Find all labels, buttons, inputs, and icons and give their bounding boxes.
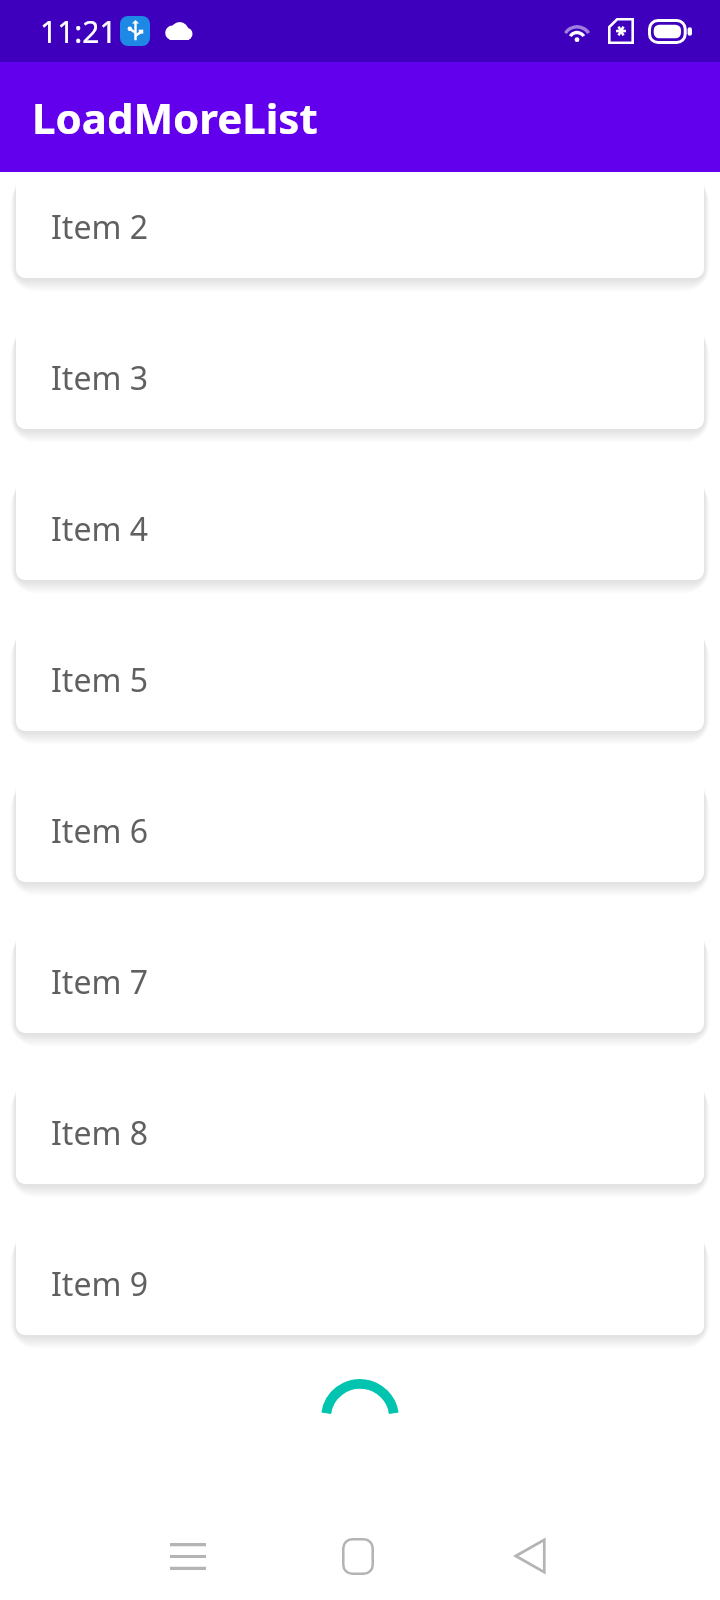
button[interactable]: Home xyxy=(322,1520,394,1592)
button[interactable]: Item 7 xyxy=(16,930,704,1033)
staticText: Item 6 xyxy=(51,809,148,853)
button[interactable]: Item 2 xyxy=(16,175,704,278)
staticText: Item 3 xyxy=(51,356,148,400)
button[interactable]: Recent apps xyxy=(152,1520,224,1592)
button[interactable]: Item 5 xyxy=(16,628,704,731)
staticText: Item 8 xyxy=(51,1111,148,1155)
staticText: Item 7 xyxy=(51,960,148,1004)
staticText: Item 4 xyxy=(51,507,148,551)
button[interactable]: Item 6 xyxy=(16,779,704,882)
button[interactable]: Back xyxy=(494,1520,566,1592)
staticText: Item 5 xyxy=(51,658,148,702)
staticText: Item 2 xyxy=(51,205,148,249)
button[interactable]: Item 8 xyxy=(16,1081,704,1184)
button[interactable]: Item 9 xyxy=(16,1232,704,1335)
staticText: 11:21 xyxy=(40,11,117,52)
staticText: Item 9 xyxy=(51,1262,148,1306)
button[interactable]: Item 3 xyxy=(16,326,704,429)
staticText: LoadMoreList xyxy=(32,89,318,146)
button[interactable]: Item 4 xyxy=(16,477,704,580)
